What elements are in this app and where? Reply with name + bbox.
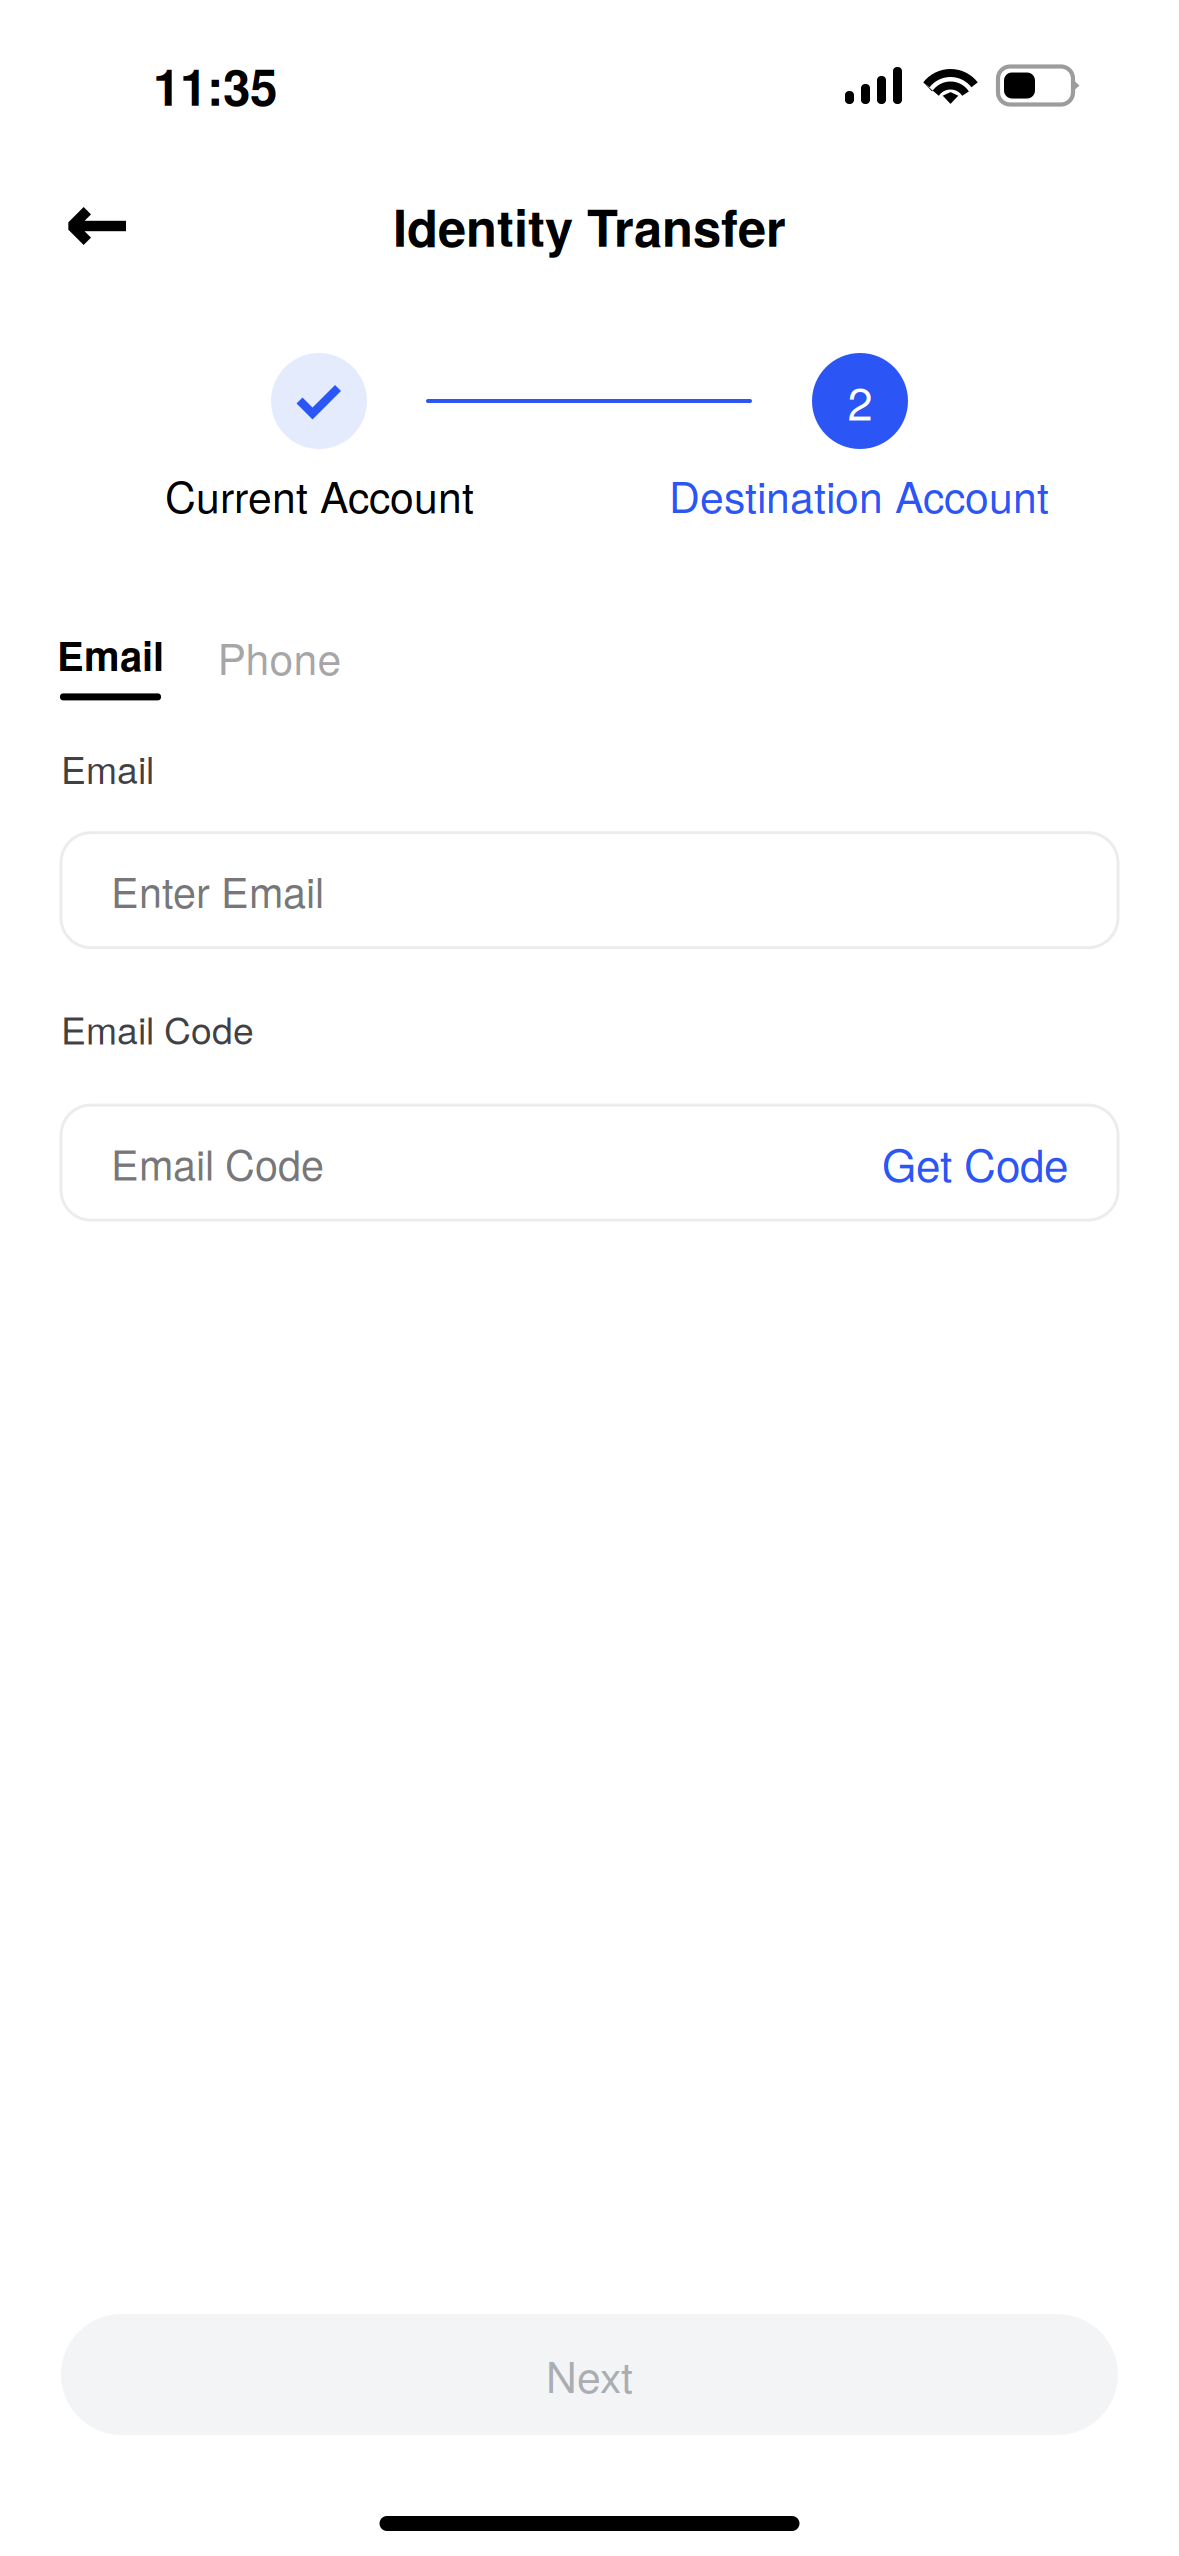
button[interactable]: Next <box>61 2314 1118 2435</box>
staticText: 11:35 <box>153 50 277 121</box>
staticText: Email Code <box>61 1002 254 1055</box>
staticText: Get Code <box>882 1131 1068 1194</box>
staticText: Email Code <box>111 1133 324 1192</box>
button[interactable]: Phone <box>222 626 337 704</box>
staticText: Email <box>61 741 154 795</box>
staticText: Destination Account <box>669 464 1049 525</box>
staticText: Phone <box>217 626 341 687</box>
staticText: Identity Transfer <box>393 190 786 262</box>
staticText: Enter Email <box>111 861 324 920</box>
staticText: Current Account <box>165 464 474 525</box>
staticText: Next <box>546 2344 633 2405</box>
button[interactable]: Back <box>0 186 161 266</box>
staticText: Email <box>57 626 164 683</box>
button[interactable]: Email <box>60 626 161 700</box>
staticText: 2 <box>847 368 872 433</box>
button[interactable]: Get Code <box>882 1131 1068 1194</box>
